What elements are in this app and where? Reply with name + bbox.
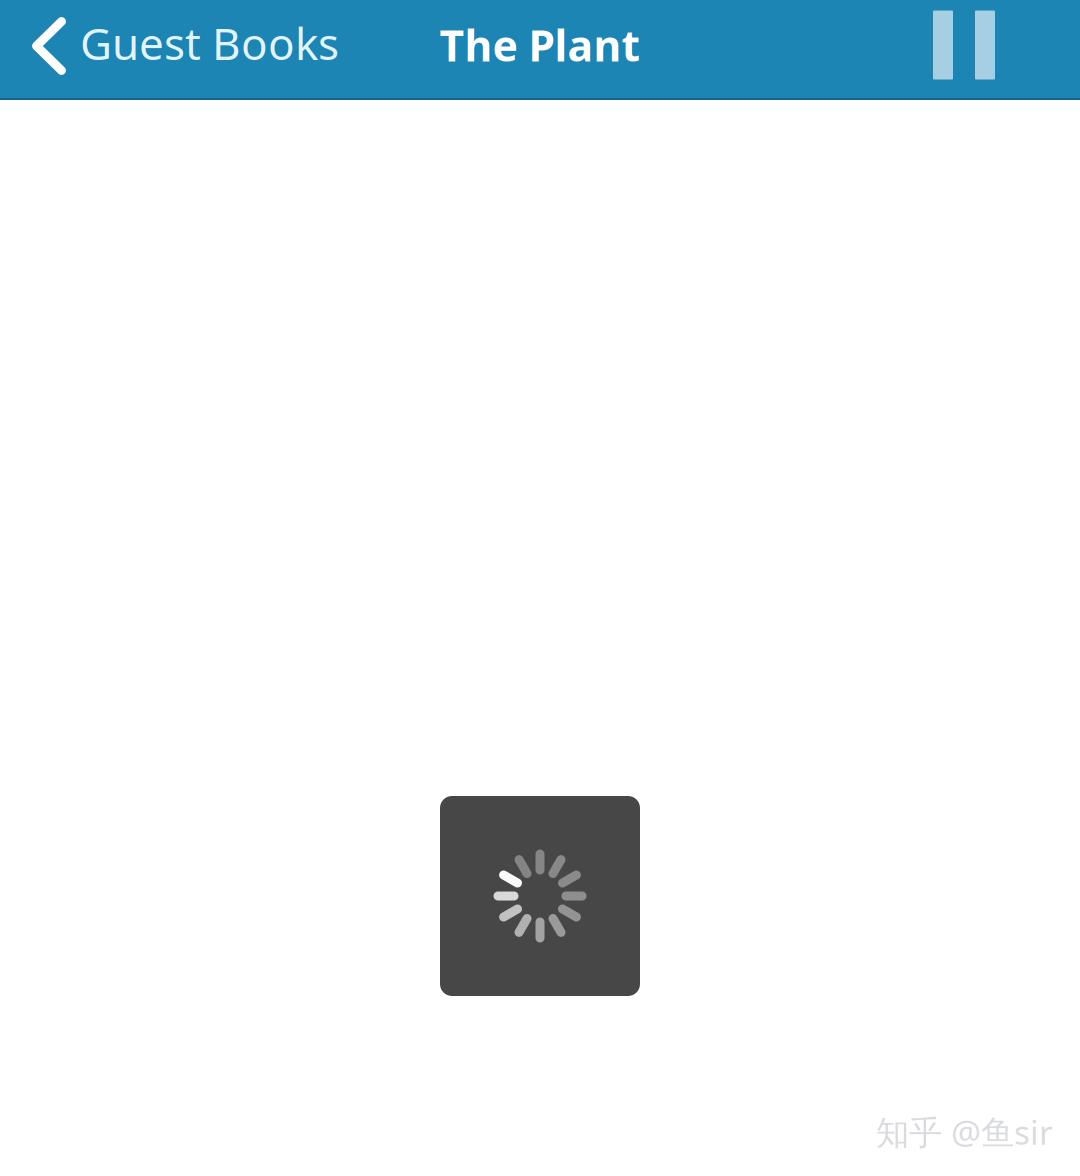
staticText: Guest Books xyxy=(80,14,339,72)
staticText: 知乎 @鱼sir xyxy=(876,1110,1053,1154)
staticText: The Plant xyxy=(439,17,640,73)
button[interactable]: Guest Books xyxy=(0,0,355,98)
button[interactable]: Pause xyxy=(903,0,1080,98)
